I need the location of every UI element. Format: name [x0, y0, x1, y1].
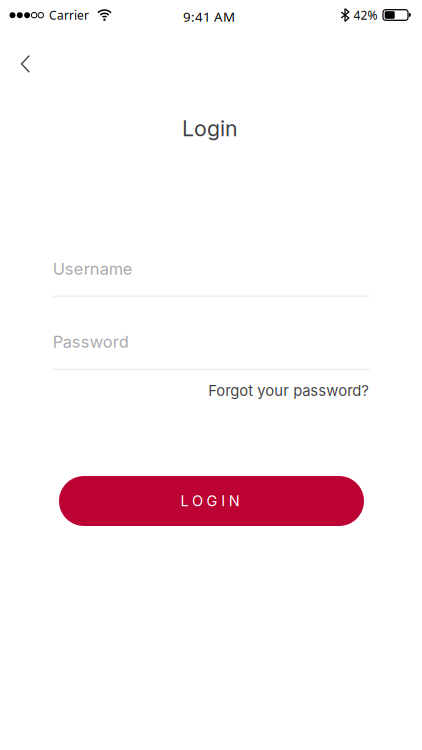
staticText: Username [53, 259, 133, 279]
button[interactable]: Back [9, 45, 42, 83]
staticText: I [221, 492, 225, 510]
staticText: G [207, 492, 218, 510]
staticText: L [180, 492, 188, 510]
staticText: N [229, 492, 240, 510]
staticText: Login [182, 115, 238, 141]
staticText: Forgot your password? [208, 381, 369, 399]
staticText: O [192, 492, 203, 510]
button[interactable]: Username [53, 259, 370, 297]
staticText: 9:41 AM [183, 8, 235, 25]
staticText: Carrier [49, 7, 89, 23]
button[interactable]: L [59, 476, 364, 526]
staticText: Password [53, 332, 129, 352]
button[interactable]: Forgot your password? [208, 381, 369, 399]
staticText: 42% [353, 7, 377, 23]
button[interactable]: Password [53, 332, 370, 370]
